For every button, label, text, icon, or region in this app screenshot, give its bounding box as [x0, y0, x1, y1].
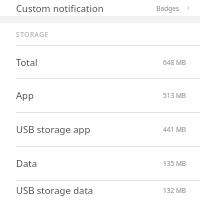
button[interactable]: USB storage app	[0, 113, 200, 146]
staticText: 135 MB	[163, 159, 186, 168]
staticText: STORAGE	[16, 30, 49, 39]
staticText: Data	[16, 157, 38, 170]
staticText: USB storage data	[16, 184, 94, 197]
button[interactable]: App	[0, 79, 200, 112]
button[interactable]: Data	[0, 147, 200, 180]
button[interactable]: Custom notification	[0, 0, 200, 16]
other: Open badges settings	[184, 4, 192, 12]
staticText: Total	[16, 56, 38, 69]
staticText: 513 MB	[163, 91, 186, 100]
staticText: App	[16, 89, 34, 102]
button[interactable]: Total	[0, 46, 200, 78]
button[interactable]: USB storage data	[0, 181, 200, 200]
staticText: 441 MB	[163, 125, 186, 134]
staticText: 648 MB	[163, 58, 186, 67]
staticText: Badges	[156, 4, 179, 13]
staticText: 132 MB	[163, 186, 186, 195]
staticText: USB storage app	[16, 123, 91, 136]
staticText: Custom notification	[16, 2, 104, 15]
